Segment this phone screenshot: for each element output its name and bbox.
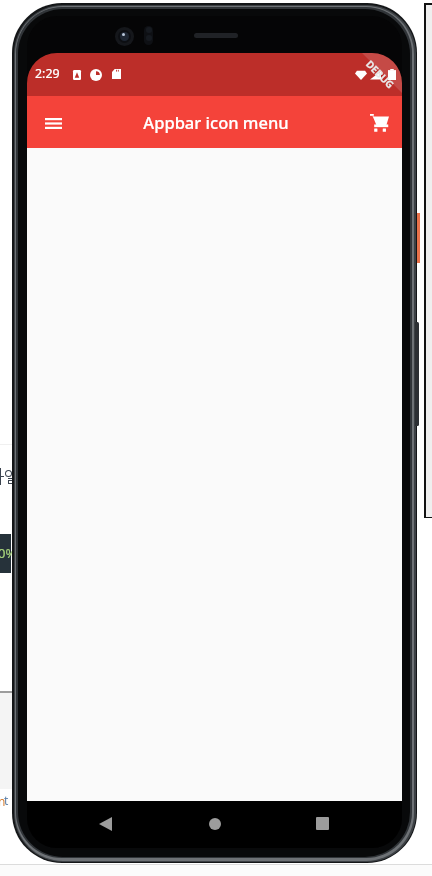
button[interactable]: Menu xyxy=(29,99,77,147)
staticText: t xyxy=(4,792,9,808)
button[interactable]: Home xyxy=(192,801,237,846)
staticText: Appbar icon menu xyxy=(143,111,289,133)
staticText: DEBUG xyxy=(363,57,398,92)
button[interactable]: Recents xyxy=(300,801,345,846)
button[interactable]: Shopping cart xyxy=(355,99,402,147)
staticText: n xyxy=(0,793,6,809)
button[interactable]: Back xyxy=(83,801,128,846)
staticText: 2:29 xyxy=(35,65,60,82)
staticText: 0% xyxy=(0,544,17,562)
